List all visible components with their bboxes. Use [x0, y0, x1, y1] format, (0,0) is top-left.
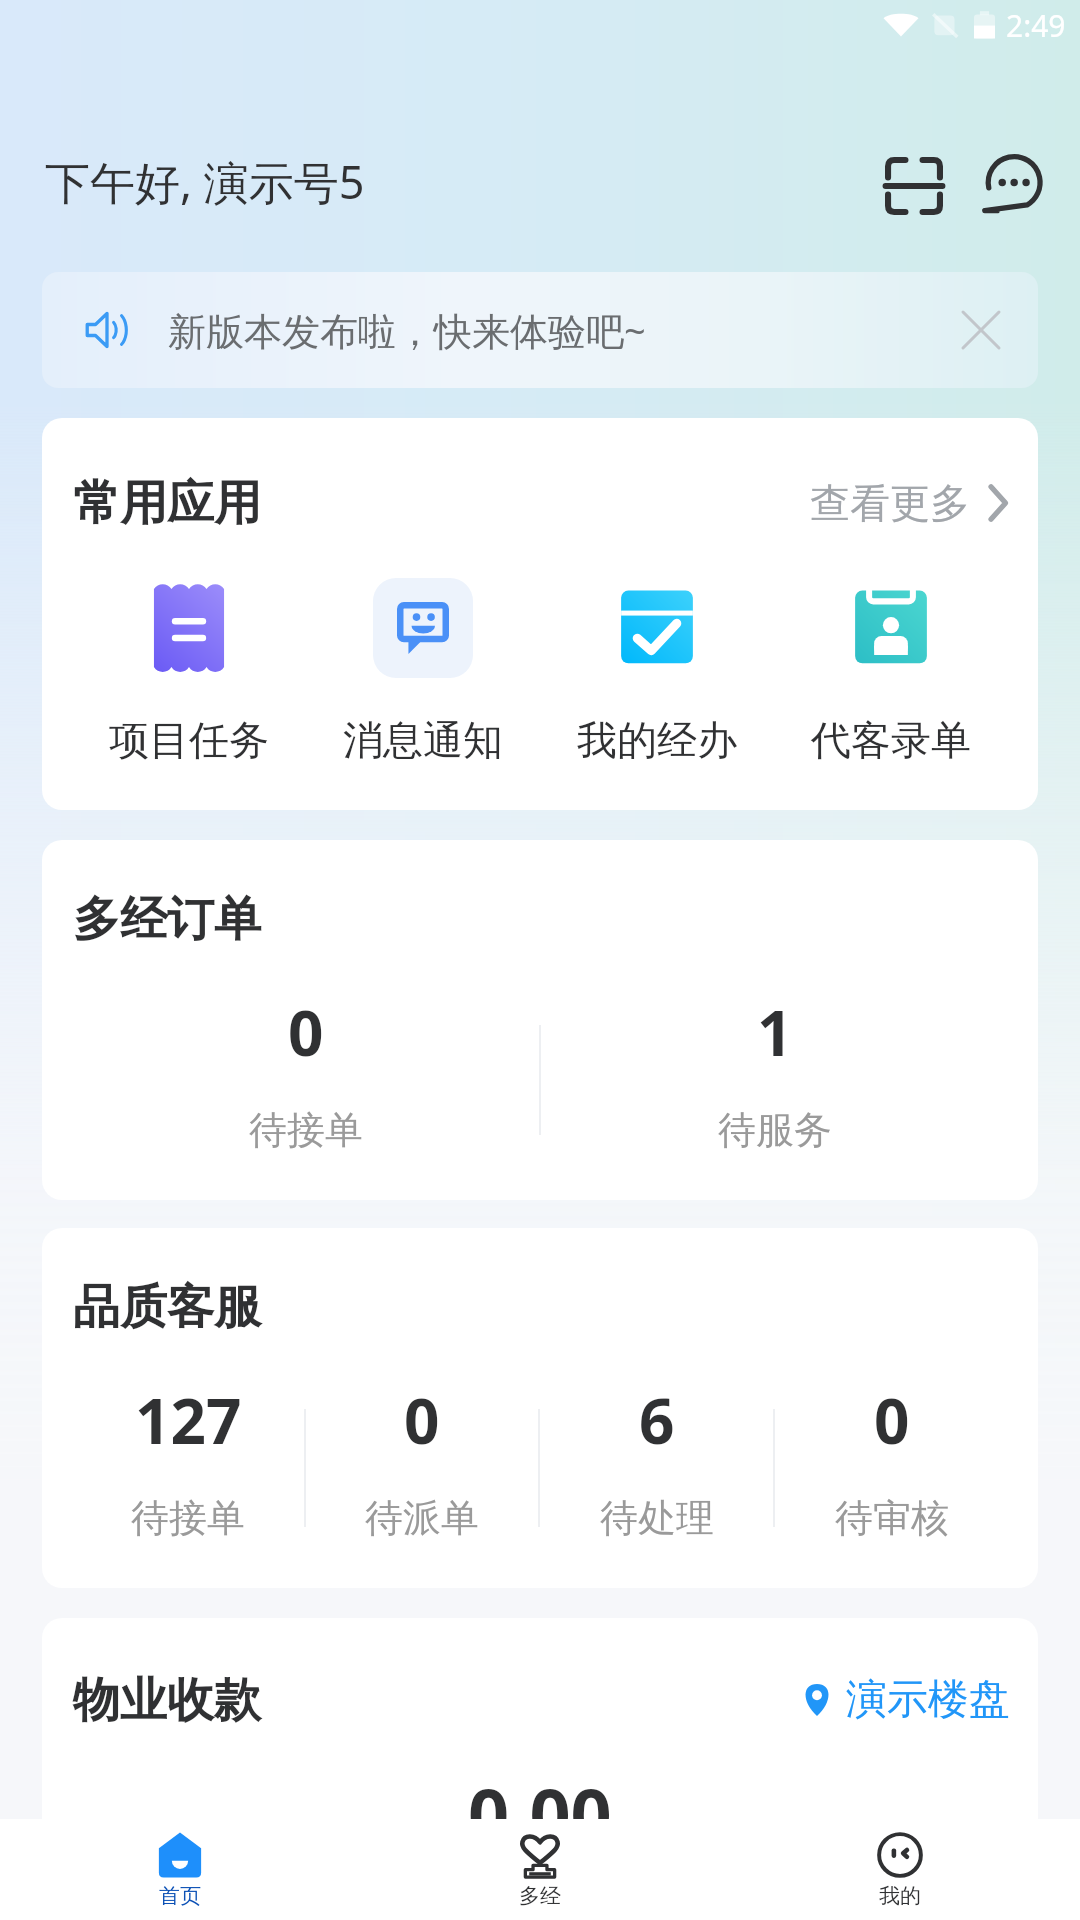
- button[interactable]: Close: [950, 299, 1012, 361]
- button[interactable]: 1: [541, 990, 1008, 1170]
- button[interactable]: 0: [306, 1378, 538, 1558]
- button[interactable]: Scan: [874, 146, 954, 226]
- staticText: 待处理: [600, 1494, 714, 1542]
- staticText: 多经订单: [73, 890, 261, 949]
- button[interactable]: 演示楼盘: [800, 1668, 1010, 1732]
- staticText: 127: [135, 1378, 242, 1462]
- staticText: 首页: [159, 1883, 201, 1909]
- button[interactable]: 6: [540, 1378, 773, 1558]
- staticText: 新版本发布啦，快来体验吧~: [168, 304, 646, 356]
- staticText: 多经: [519, 1883, 561, 1909]
- staticText: 待接单: [249, 1106, 363, 1154]
- staticText: 查看更多: [810, 478, 970, 528]
- button[interactable]: 代客录单: [774, 576, 1008, 765]
- staticText: 下午好, 演示号5: [45, 151, 365, 212]
- staticText: 0: [874, 1378, 910, 1462]
- staticText: 0.00: [468, 1764, 612, 1862]
- button[interactable]: Messages: [970, 146, 1050, 226]
- button[interactable]: 查看更多: [802, 468, 1016, 538]
- button[interactable]: 我的经办: [540, 576, 774, 765]
- button[interactable]: 项目任务: [72, 576, 306, 765]
- staticText: 待派单: [365, 1494, 479, 1542]
- button[interactable]: 0: [775, 1378, 1008, 1558]
- staticText: 2:49: [1006, 5, 1066, 46]
- staticText: 1: [757, 990, 793, 1074]
- staticText: 0: [288, 990, 324, 1074]
- button[interactable]: 消息通知: [306, 576, 540, 765]
- button[interactable]: 我的: [720, 1819, 1080, 1920]
- button[interactable]: 新版本发布啦，快来体验吧~: [42, 272, 1038, 388]
- staticText: 常用应用: [73, 474, 261, 533]
- button[interactable]: 首页: [0, 1819, 360, 1920]
- staticText: 待审核: [835, 1494, 949, 1542]
- staticText: 我的: [879, 1883, 921, 1909]
- staticText: 0: [404, 1378, 440, 1462]
- button[interactable]: 127: [72, 1378, 304, 1558]
- staticText: 6: [639, 1378, 675, 1462]
- staticText: 待接单: [131, 1494, 245, 1542]
- staticText: 代客录单: [811, 715, 971, 765]
- button[interactable]: 多经: [360, 1819, 720, 1920]
- staticText: 消息通知: [343, 715, 503, 765]
- staticText: 我的经办: [577, 715, 737, 765]
- staticText: 待服务: [718, 1106, 832, 1154]
- staticText: 演示楼盘: [846, 1674, 1010, 1726]
- staticText: 项目任务: [109, 715, 269, 765]
- staticText: 物业收款: [73, 1671, 261, 1730]
- staticText: 品质客服: [73, 1278, 261, 1337]
- button[interactable]: 0: [72, 990, 539, 1170]
